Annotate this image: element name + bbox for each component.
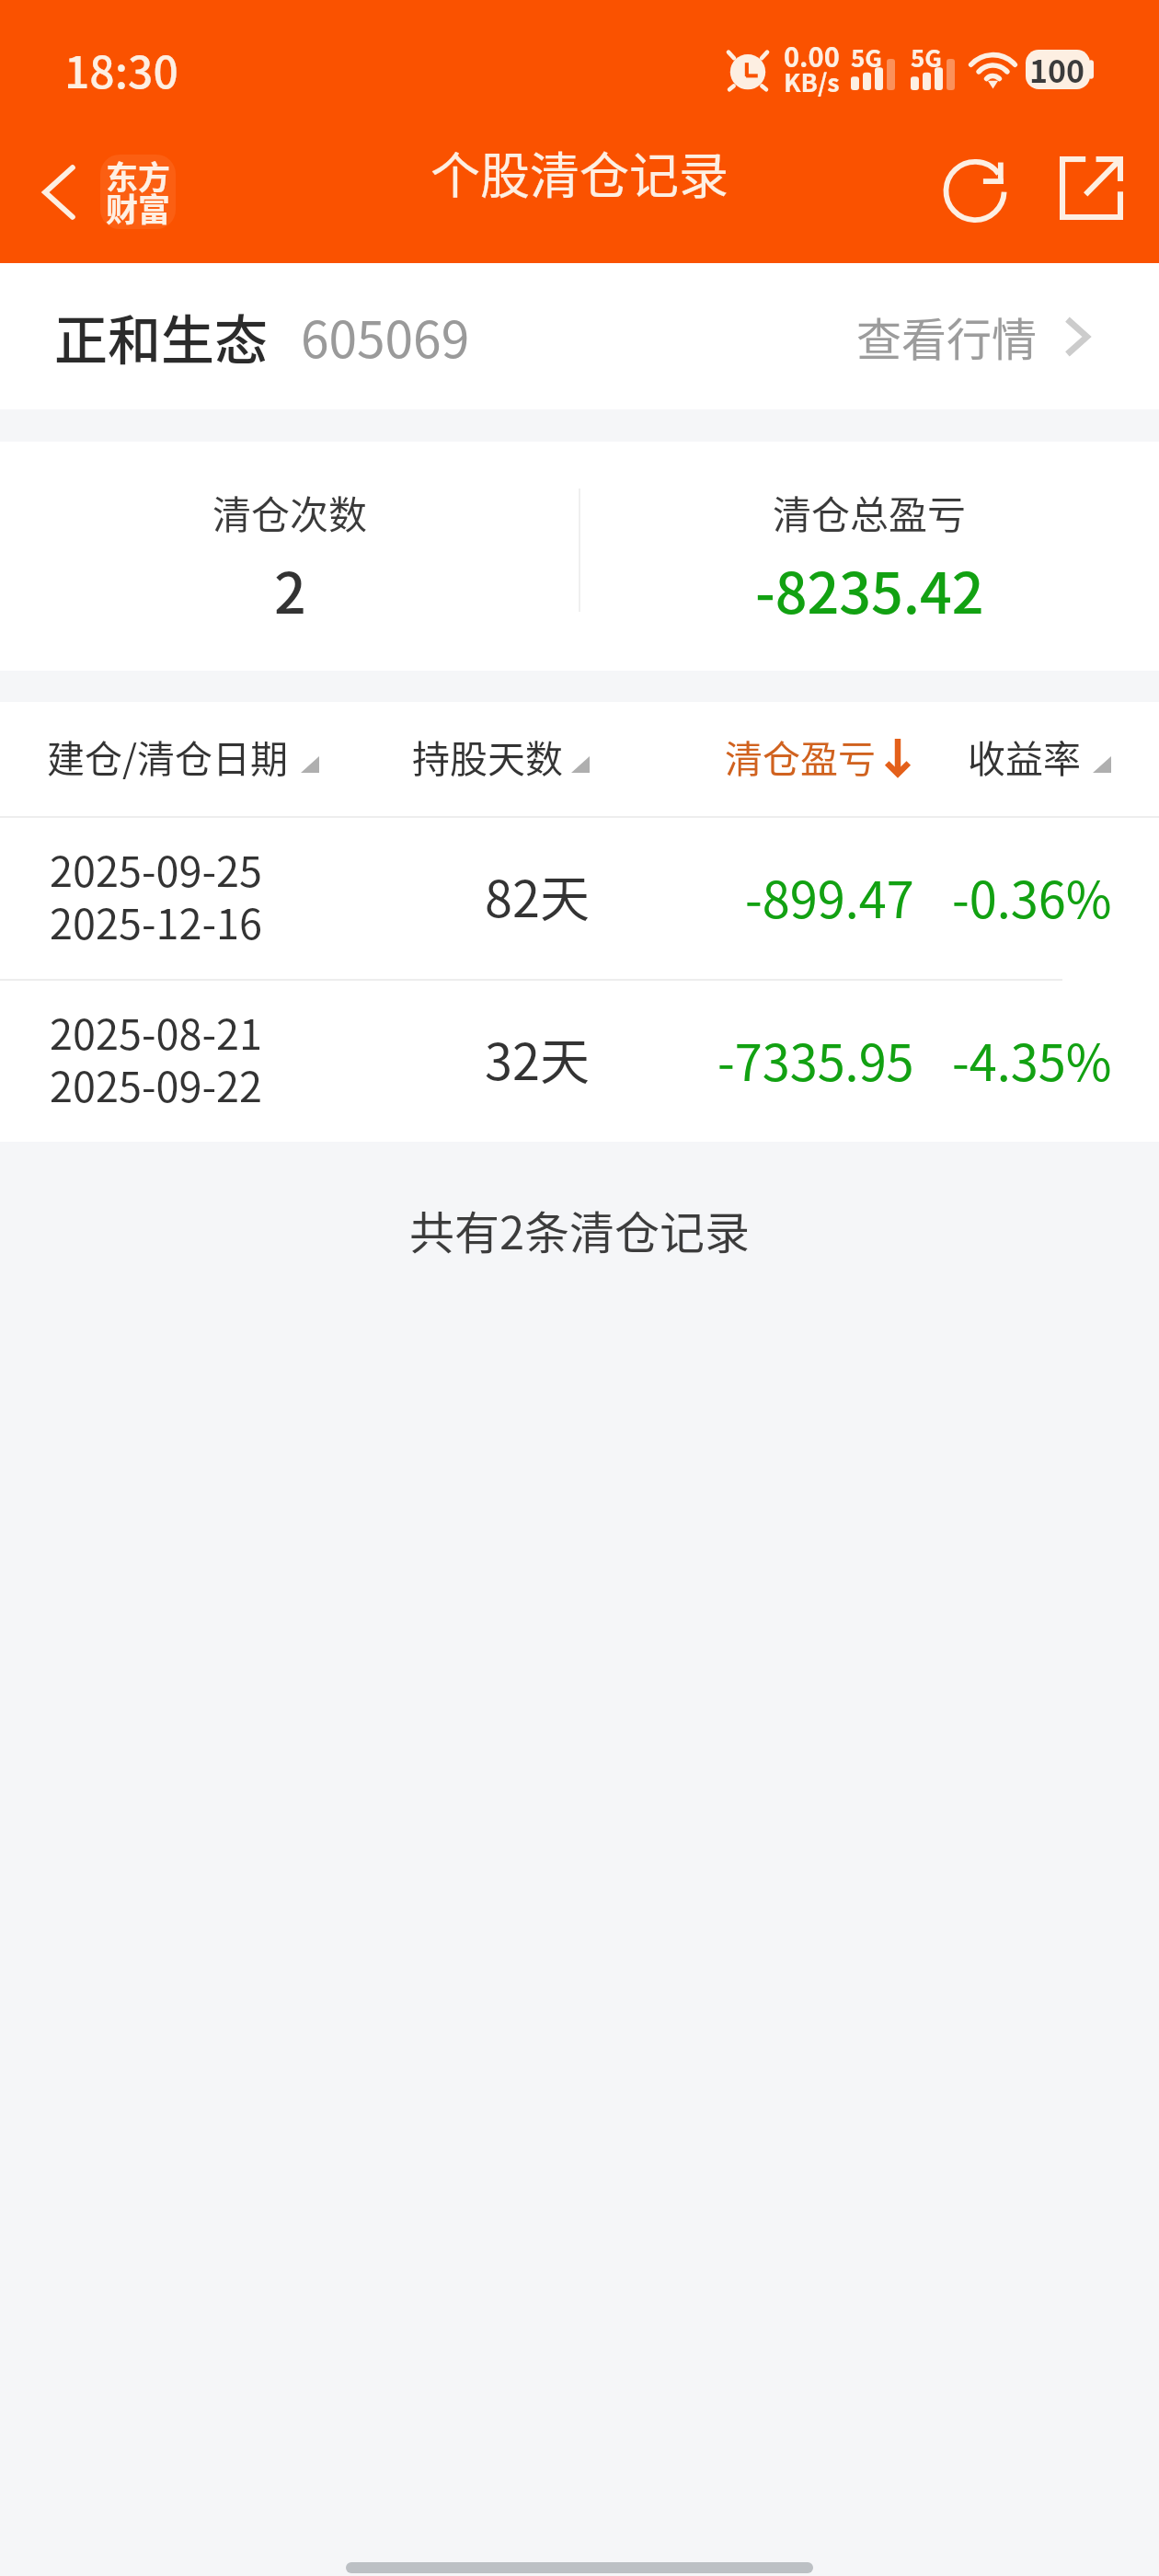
button[interactable]: 查看行情 [856,304,1090,369]
staticText: 18:30 [64,37,178,101]
staticText: 100 [1029,47,1085,92]
button[interactable]: 持股天数 [412,729,590,783]
staticText: 2025-09-25 [50,839,263,899]
staticText: 个股清仓记录 [430,136,729,208]
staticText: 5G [851,40,882,75]
staticText: 清仓总盈亏 [773,484,967,540]
staticText: 0.00 [784,36,839,75]
staticText: -4.35% [952,1023,1112,1095]
button[interactable]: 2025-09-25 [0,818,1159,979]
staticText: 建仓/清仓日期 [47,729,289,783]
staticText: -899.47 [745,860,914,932]
button[interactable]: Refresh [926,137,1027,238]
staticText: 32天 [485,1022,590,1094]
staticText: 2025-08-21 [50,1002,263,1062]
staticText: KB/s [784,63,839,99]
button[interactable]: 建仓/清仓日期 [47,729,319,783]
staticText: -7335.95 [717,1023,914,1095]
button[interactable]: 收益率 [968,729,1111,783]
staticText: 5G [911,40,942,75]
staticText: 2025-09-22 [50,1054,263,1114]
button[interactable]: 2025-08-21 [0,981,1159,1142]
other: Back [41,164,76,221]
staticText: 持股天数 [412,729,563,783]
staticText: 清仓次数 [212,484,368,540]
staticText: 2 [274,548,306,629]
staticText: 2025-12-16 [50,891,263,951]
staticText: 东方 [106,155,171,199]
button[interactable]: 清仓盈亏 [725,729,912,783]
staticText: 共有2条清仓记录 [0,1197,1159,1262]
button[interactable]: Back [41,155,176,229]
staticText: 正和生态 [54,298,269,375]
staticText: 清仓盈亏 [725,729,876,783]
button[interactable]: Share [1040,137,1142,238]
staticText: 查看行情 [856,304,1038,369]
staticText: 605069 [301,299,470,373]
staticText: 82天 [485,859,590,931]
staticText: 财富 [106,184,171,229]
staticText: -8235.42 [755,548,984,629]
staticText: 收益率 [968,729,1081,783]
staticText: -0.36% [952,860,1112,932]
